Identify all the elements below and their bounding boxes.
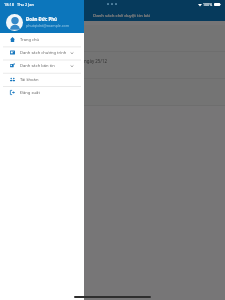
button[interactable]: Trang chủ	[0, 33, 84, 46]
staticText: Tài khoản	[20, 77, 39, 83]
staticText: Danh sách chờ duyệt tin bài	[93, 12, 150, 18]
staticText: Danh sách bản tin	[20, 63, 55, 69]
staticText: Danh sách chương trình	[20, 50, 67, 56]
staticText: 18:18 Thu 2 Jan	[4, 2, 34, 7]
staticText: Đoàn Đức Phú	[26, 16, 57, 22]
button[interactable]: Danh sách chương trình	[0, 46, 84, 59]
staticText: Trang chủ	[20, 37, 40, 43]
button[interactable]: Danh sách bản tin	[0, 59, 84, 72]
button[interactable]: Đăng xuất	[0, 86, 84, 99]
button[interactable]	[0, 25, 225, 51]
staticText: Đăng xuất	[20, 90, 40, 96]
button[interactable]: ngày 25/12	[0, 52, 225, 78]
staticText: ngày 25/12	[84, 58, 107, 64]
button[interactable]	[0, 79, 225, 105]
staticText: phutqtdnt@example.com	[26, 23, 70, 28]
staticText: 100%	[203, 2, 213, 7]
button[interactable]: Tài khoản	[0, 73, 84, 86]
